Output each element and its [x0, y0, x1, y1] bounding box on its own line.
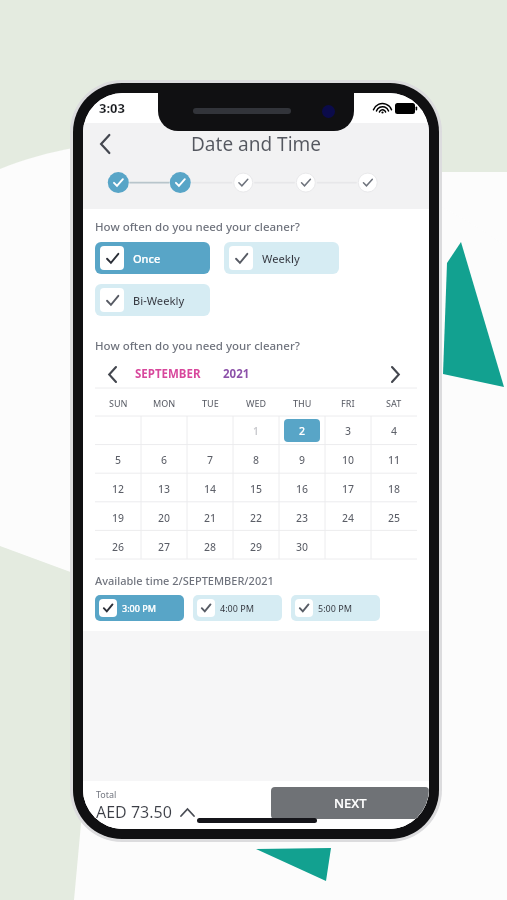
- staticText: 21: [204, 511, 217, 525]
- staticText: SEPTEMBER: [135, 366, 201, 382]
- staticText: 26: [112, 540, 125, 554]
- staticText: WED: [246, 397, 267, 409]
- staticText: 23: [296, 511, 309, 525]
- staticText: 3:03: [99, 99, 125, 117]
- staticText: SUN: [109, 397, 128, 409]
- button[interactable]: 14: [187, 474, 233, 503]
- button[interactable]: 1: [233, 416, 279, 445]
- staticText: 5: [115, 453, 122, 467]
- staticText: FRI: [341, 397, 355, 409]
- button[interactable]: Expand total: [179, 804, 195, 820]
- staticText: 16: [296, 482, 309, 496]
- button[interactable]: 15: [233, 474, 279, 503]
- staticText: NEXT: [334, 794, 367, 812]
- button[interactable]: 5:00 PM: [291, 595, 380, 621]
- staticText: 7: [207, 453, 214, 467]
- staticText: SAT: [386, 397, 402, 409]
- button[interactable]: 25: [371, 503, 417, 532]
- staticText: THU: [293, 397, 312, 409]
- staticText: 2: [299, 424, 306, 438]
- button[interactable]: 12: [95, 474, 141, 503]
- button[interactable]: 3: [325, 416, 371, 445]
- staticText: 22: [250, 511, 263, 525]
- button[interactable]: 29: [233, 532, 279, 561]
- staticText: 3: [345, 424, 352, 438]
- button[interactable]: NEXT: [271, 787, 429, 819]
- button[interactable]: Previous month: [95, 360, 131, 388]
- staticText: AED 73.50: [96, 801, 172, 823]
- button[interactable]: Once: [95, 242, 210, 274]
- staticText: 6: [161, 453, 168, 467]
- staticText: 5:00 PM: [318, 602, 352, 614]
- staticText: 9: [299, 453, 306, 467]
- staticText: 25: [388, 511, 401, 525]
- staticText: 18: [388, 482, 401, 496]
- staticText: 19: [112, 511, 125, 525]
- staticText: Available time 2/SEPTEMBER/2021: [95, 573, 274, 588]
- button[interactable]: 21: [187, 503, 233, 532]
- button[interactable]: 27: [141, 532, 187, 561]
- button[interactable]: 26: [95, 532, 141, 561]
- button[interactable]: 9: [279, 445, 325, 474]
- staticText: TUE: [202, 397, 219, 409]
- staticText: How often do you need your cleaner?: [95, 219, 300, 235]
- button[interactable]: 18: [371, 474, 417, 503]
- button[interactable]: 8: [233, 445, 279, 474]
- staticText: 14: [204, 482, 217, 496]
- button[interactable]: 3:00 PM: [95, 595, 184, 621]
- button[interactable]: 24: [325, 503, 371, 532]
- button[interactable]: 19: [95, 503, 141, 532]
- staticText: Date and Time: [191, 131, 322, 157]
- button[interactable]: 13: [141, 474, 187, 503]
- staticText: 20: [158, 511, 171, 525]
- button[interactable]: 17: [325, 474, 371, 503]
- staticText: 17: [342, 482, 355, 496]
- staticText: 27: [158, 540, 171, 554]
- button[interactable]: 30: [279, 532, 325, 561]
- button[interactable]: 10: [325, 445, 371, 474]
- staticText: 10: [342, 453, 355, 467]
- staticText: 3:00 PM: [122, 602, 156, 614]
- staticText: 28: [204, 540, 217, 554]
- button[interactable]: Bi-Weekly: [95, 284, 210, 316]
- staticText: 30: [296, 540, 309, 554]
- staticText: Total: [96, 788, 117, 800]
- staticText: 15: [250, 482, 263, 496]
- button[interactable]: Weekly: [224, 242, 339, 274]
- staticText: 8: [253, 453, 260, 467]
- staticText: 11: [388, 453, 401, 467]
- staticText: MON: [153, 397, 176, 409]
- staticText: 1: [253, 424, 260, 438]
- staticText: 24: [342, 511, 355, 525]
- button[interactable]: 11: [371, 445, 417, 474]
- button[interactable]: 23: [279, 503, 325, 532]
- button[interactable]: 4: [371, 416, 417, 445]
- staticText: 29: [250, 540, 263, 554]
- button[interactable]: Back: [89, 128, 121, 160]
- button[interactable]: 6: [141, 445, 187, 474]
- staticText: 4:00 PM: [220, 602, 254, 614]
- button[interactable]: 2: [284, 419, 320, 442]
- button[interactable]: Next month: [373, 360, 417, 388]
- button[interactable]: 5: [95, 445, 141, 474]
- staticText: Weekly: [262, 251, 300, 266]
- button[interactable]: 16: [279, 474, 325, 503]
- staticText: 13: [158, 482, 171, 496]
- staticText: 2021: [223, 366, 250, 382]
- staticText: 4: [391, 424, 398, 438]
- button[interactable]: 20: [141, 503, 187, 532]
- button[interactable]: 4:00 PM: [193, 595, 282, 621]
- staticText: 12: [112, 482, 125, 496]
- staticText: How often do you need your cleaner?: [95, 338, 300, 354]
- staticText: Bi-Weekly: [133, 293, 185, 308]
- button[interactable]: 7: [187, 445, 233, 474]
- button[interactable]: 22: [233, 503, 279, 532]
- button[interactable]: 28: [187, 532, 233, 561]
- staticText: Once: [133, 251, 161, 266]
